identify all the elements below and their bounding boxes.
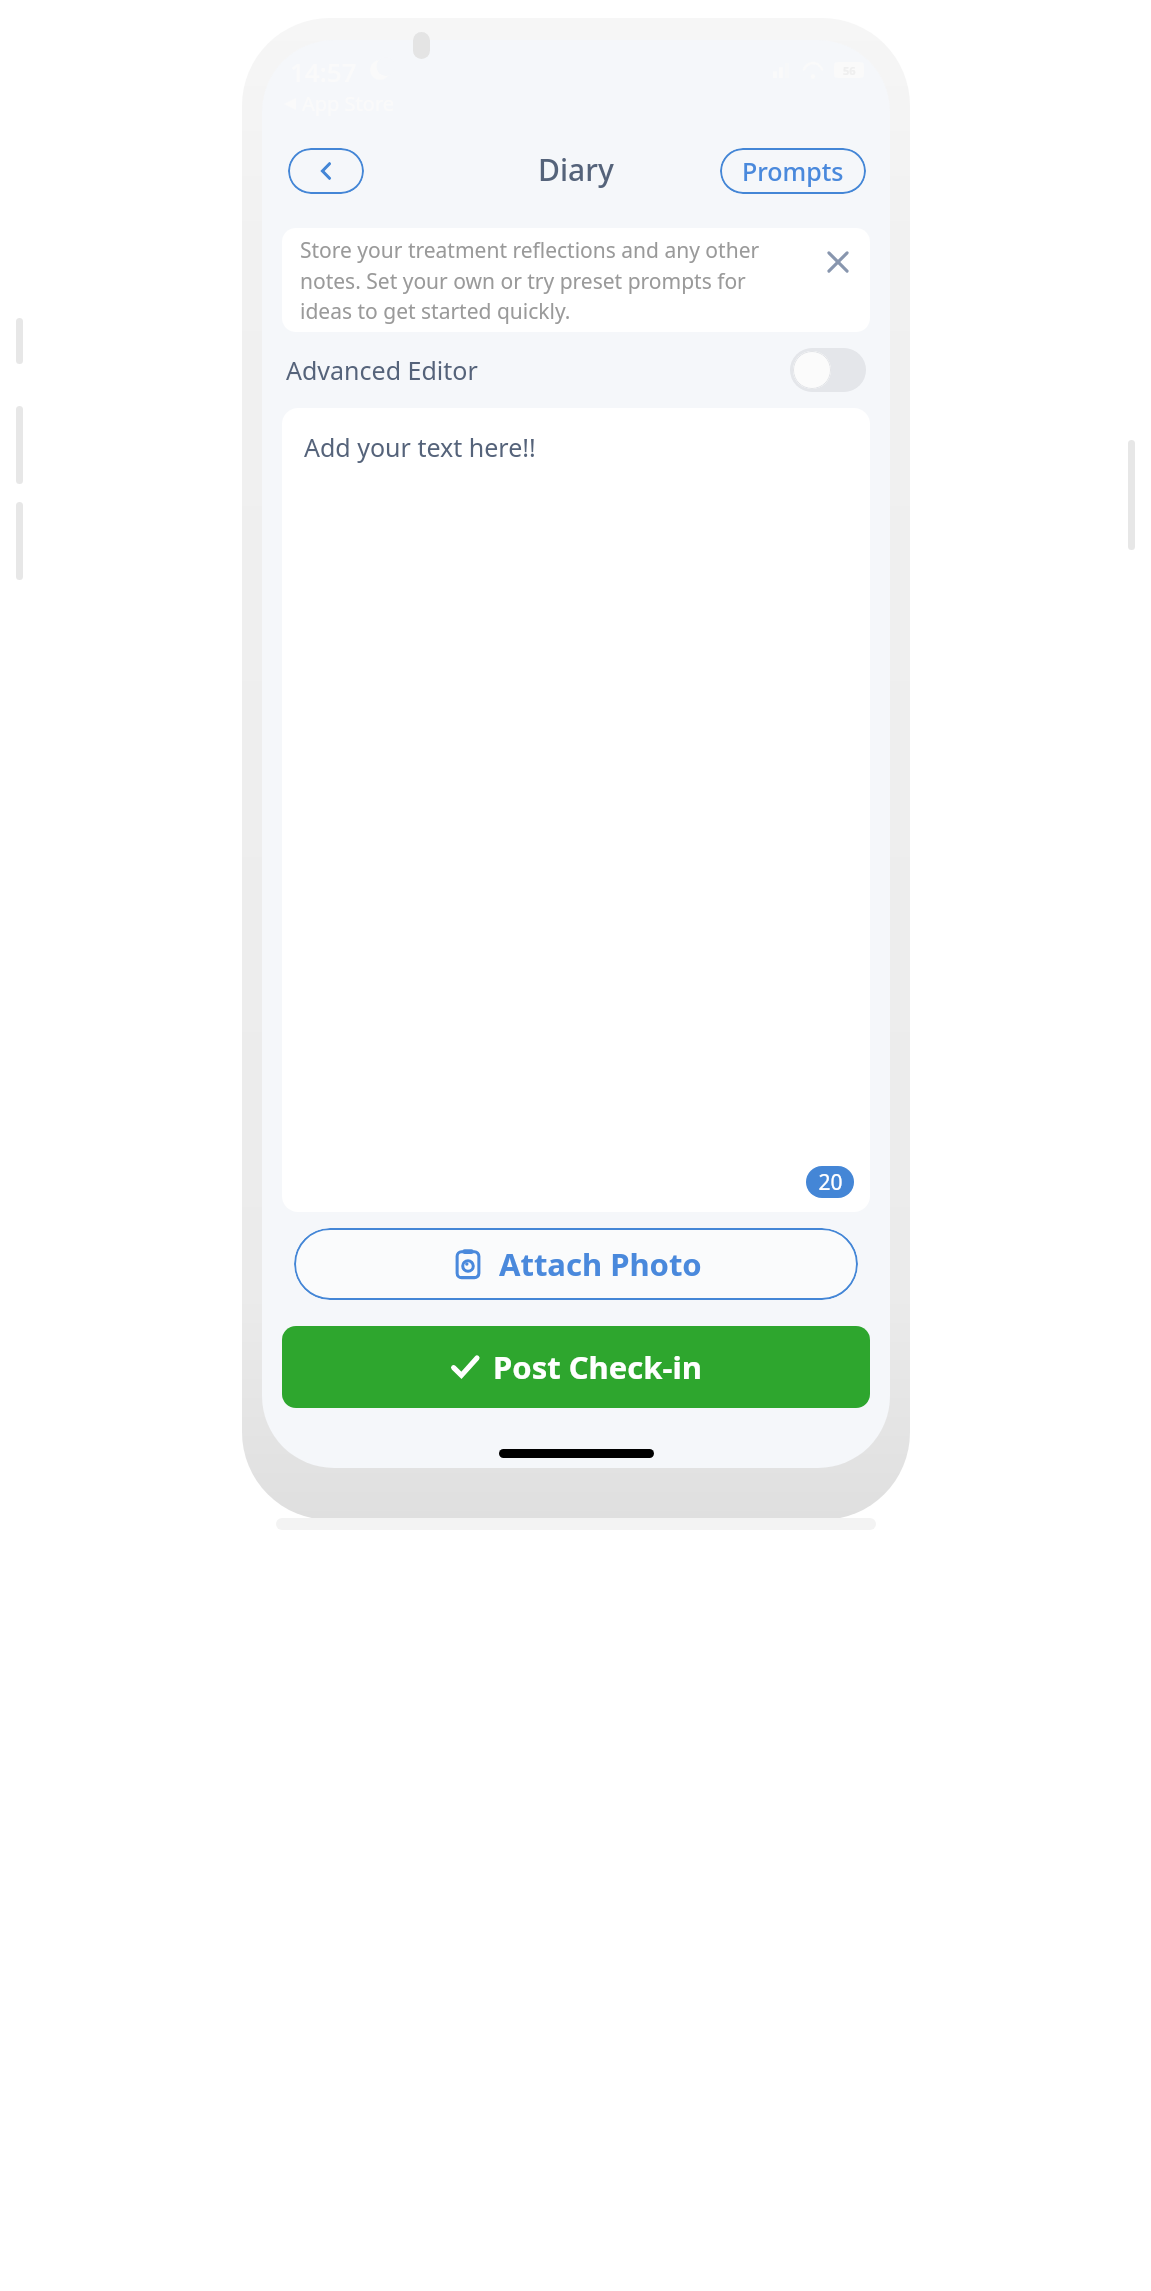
staticText: Post Check-in bbox=[493, 1346, 702, 1388]
staticText: Prompts bbox=[742, 154, 844, 188]
button[interactable]: Dismiss bbox=[814, 238, 862, 286]
staticText: Add your text here!! bbox=[304, 430, 536, 464]
button[interactable]: Back bbox=[288, 148, 364, 194]
staticText: Attach Photo bbox=[499, 1243, 702, 1285]
other: Advanced Editor toggle bbox=[790, 348, 866, 392]
button[interactable]: Add your text here!! bbox=[282, 408, 870, 1212]
staticText: Advanced Editor bbox=[286, 353, 478, 387]
button[interactable]: Post Check-in bbox=[282, 1326, 870, 1408]
staticText: Diary bbox=[538, 149, 614, 190]
staticText: 56 bbox=[843, 63, 856, 78]
staticText: Store your treatment reflections and any… bbox=[300, 236, 794, 325]
button[interactable]: Prompts bbox=[720, 148, 866, 194]
button[interactable]: Advanced Editor bbox=[262, 332, 890, 408]
button[interactable]: Attach Photo bbox=[294, 1228, 858, 1300]
staticText: 20 bbox=[818, 1168, 843, 1197]
